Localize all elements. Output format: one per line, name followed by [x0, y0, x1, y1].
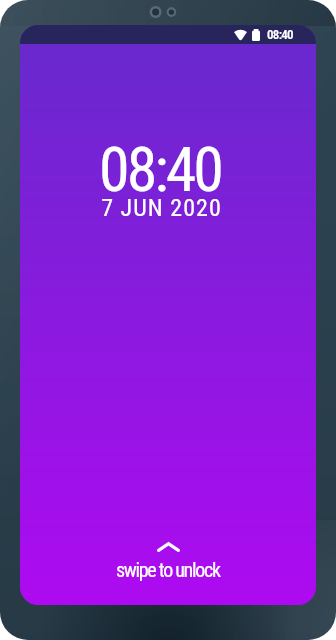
- staticText: 08:40: [99, 133, 221, 206]
- staticText: 7 JUN 2020: [101, 194, 222, 222]
- staticText: 08:40: [267, 27, 293, 42]
- staticText: swipe to unlock: [116, 558, 220, 581]
- button[interactable]: Swipe to unlock: [20, 542, 316, 605]
